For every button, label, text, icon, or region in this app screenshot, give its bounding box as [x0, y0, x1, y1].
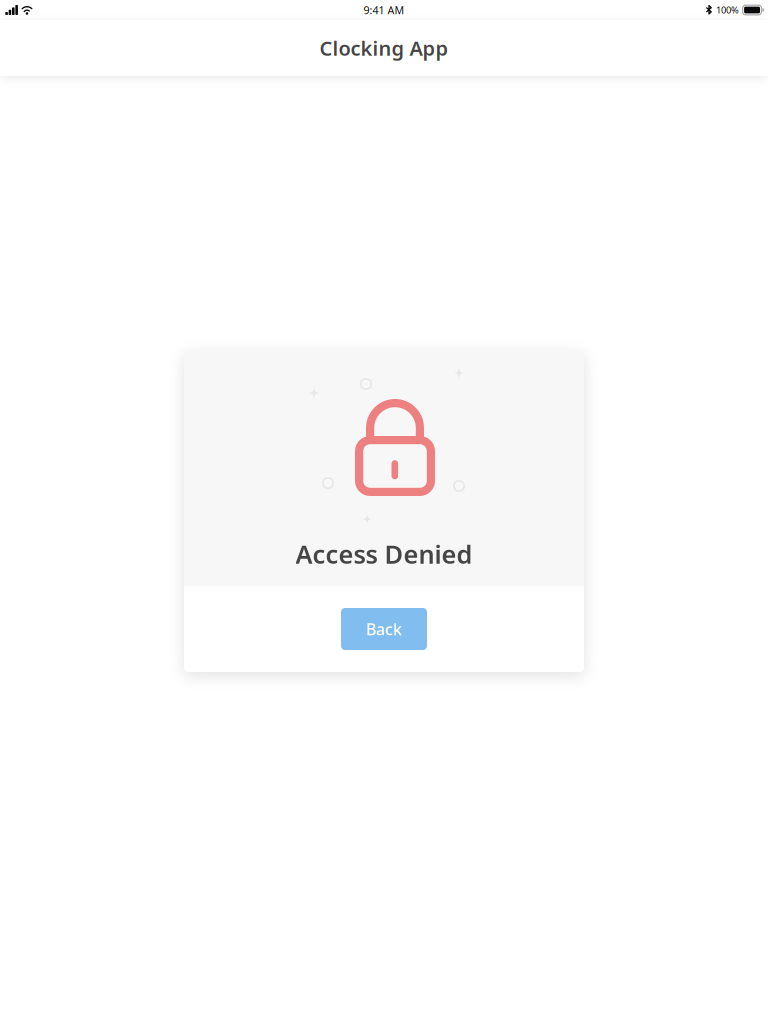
staticText: 100% [716, 4, 739, 16]
staticText: Back [366, 618, 402, 640]
staticText: Clocking App [319, 35, 448, 61]
staticText: 9:41 AM [363, 3, 404, 17]
button[interactable]: Back [341, 608, 427, 650]
staticText: Access Denied [295, 537, 472, 571]
